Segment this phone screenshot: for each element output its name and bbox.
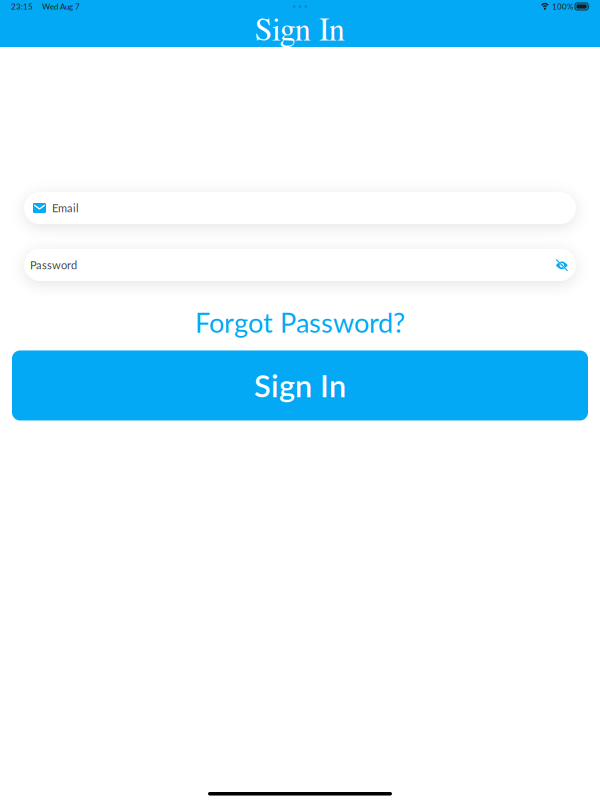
staticText: Forgot Password?: [195, 306, 405, 338]
staticText: Wed Aug 7: [42, 2, 80, 11]
button[interactable]: Sign In: [12, 350, 588, 420]
staticText: Email: [52, 201, 79, 215]
button[interactable]: Email: [24, 192, 576, 224]
button[interactable]: Show password: [556, 250, 576, 279]
staticText: Sign In: [255, 15, 345, 47]
staticText: Sign In: [254, 367, 346, 404]
staticText: Password: [30, 258, 77, 272]
button[interactable]: Forgot Password?: [195, 306, 405, 338]
staticText: 100%: [552, 2, 573, 11]
staticText: 23:15: [11, 2, 33, 11]
